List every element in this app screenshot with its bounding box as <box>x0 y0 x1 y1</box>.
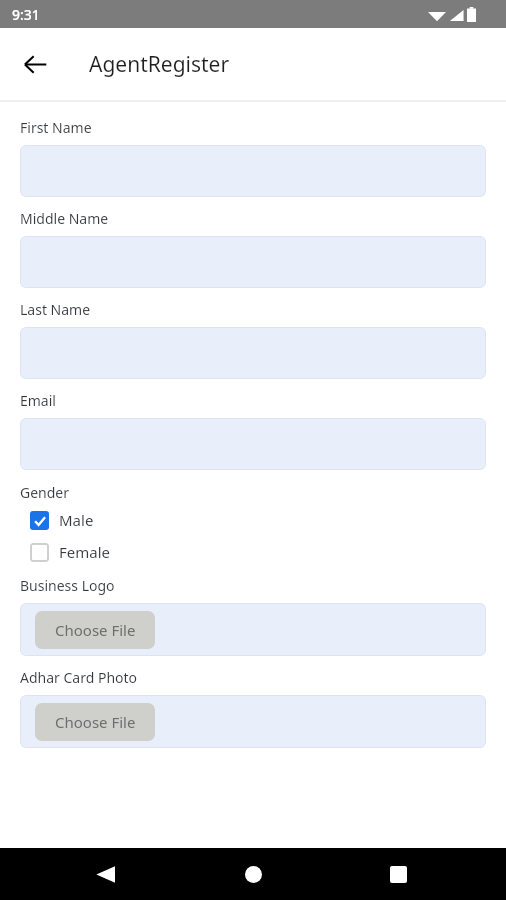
button[interactable]: Home <box>232 853 274 895</box>
staticText: Middle Name <box>20 209 109 228</box>
button[interactable]: Back <box>14 43 56 85</box>
staticText: Female <box>59 542 111 562</box>
staticText: Adhar Card Photo <box>20 668 138 687</box>
staticText: Male <box>59 510 94 530</box>
staticText: First Name <box>20 118 92 137</box>
button[interactable]: Choose File <box>35 703 155 741</box>
staticText: Choose File <box>55 620 136 640</box>
staticText: Last Name <box>20 300 91 319</box>
staticText: Email <box>20 391 56 410</box>
button[interactable]: Female <box>30 542 111 562</box>
staticText: AgentRegister <box>89 50 230 79</box>
staticText: 9:31 <box>12 5 40 24</box>
button[interactable]: Back <box>84 853 126 895</box>
button[interactable]: Male <box>30 510 94 530</box>
staticText: Business Logo <box>20 576 115 595</box>
staticText: Gender <box>20 483 70 502</box>
button[interactable]: Recents <box>377 853 419 895</box>
staticText: Choose File <box>55 712 136 732</box>
button[interactable]: Choose File <box>35 611 155 649</box>
